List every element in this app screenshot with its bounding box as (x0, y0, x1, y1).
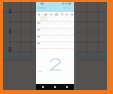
button[interactable] (36, 2, 74, 12)
button[interactable] (64, 28, 69, 35)
button[interactable] (54, 15, 59, 21)
button[interactable] (42, 28, 48, 35)
button[interactable] (64, 21, 69, 28)
staticText: T (61, 13, 63, 16)
button[interactable] (48, 15, 54, 21)
button[interactable] (54, 42, 59, 49)
button[interactable] (64, 15, 69, 21)
button[interactable] (69, 15, 74, 21)
button[interactable] (59, 28, 64, 35)
staticText: T (50, 13, 52, 16)
button[interactable] (42, 21, 48, 28)
button[interactable] (48, 28, 54, 35)
button[interactable] (59, 21, 64, 28)
button[interactable] (64, 42, 69, 49)
button[interactable] (59, 35, 64, 42)
button[interactable] (69, 42, 74, 49)
button[interactable] (42, 35, 48, 42)
button[interactable] (69, 21, 74, 28)
staticText: W (55, 13, 58, 16)
button[interactable] (69, 35, 74, 42)
button[interactable] (48, 35, 54, 42)
button[interactable] (64, 35, 69, 42)
button[interactable] (36, 42, 42, 49)
button[interactable] (42, 15, 48, 21)
staticText: 8 (8, 45, 13, 55)
staticText: S (71, 13, 73, 16)
button[interactable] (36, 28, 42, 35)
staticText: F (66, 13, 68, 16)
staticText: 4 (8, 7, 13, 17)
staticText: S (38, 13, 40, 16)
button[interactable] (54, 28, 59, 35)
button[interactable] (36, 15, 42, 21)
staticText: M (44, 13, 47, 16)
button[interactable] (48, 42, 54, 49)
button[interactable] (54, 35, 59, 42)
button[interactable] (36, 21, 42, 28)
button[interactable] (48, 21, 54, 28)
button[interactable] (54, 21, 59, 28)
button[interactable] (36, 35, 42, 42)
staticText: 3 (8, 27, 13, 37)
button[interactable] (59, 15, 64, 21)
button[interactable] (42, 42, 48, 49)
button[interactable] (59, 42, 64, 49)
button[interactable] (69, 28, 74, 35)
